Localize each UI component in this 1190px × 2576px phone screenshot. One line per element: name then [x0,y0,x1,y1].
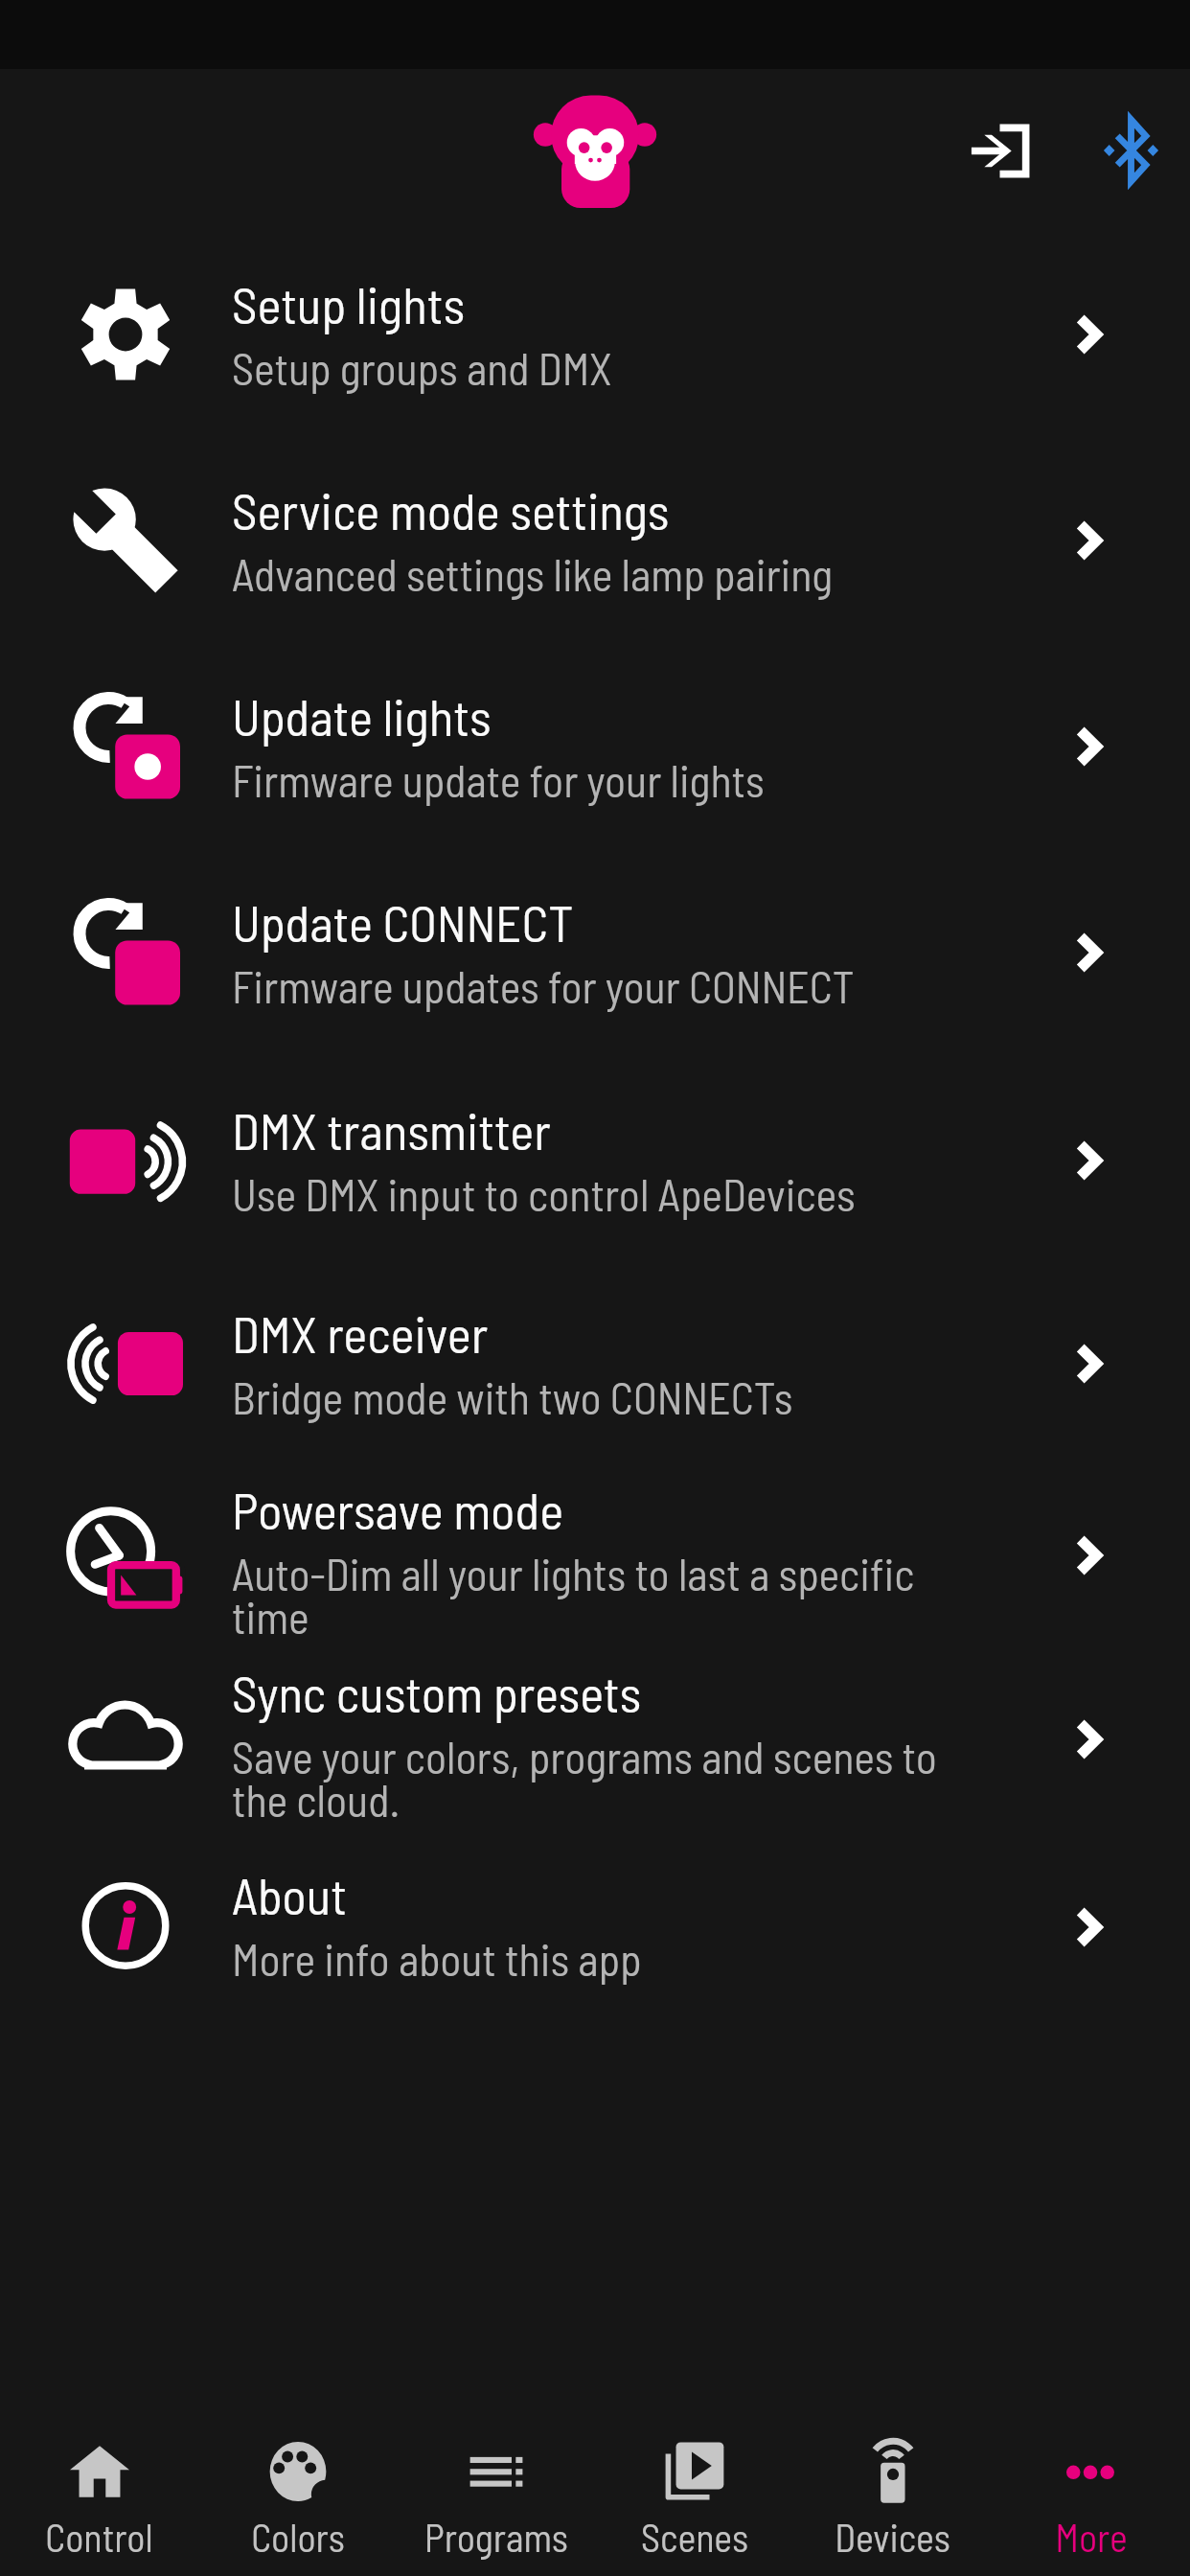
staticText: Control [45,2514,153,2560]
staticText: Firmware update for your lights [232,753,765,806]
staticText: Firmware updates for your CONNECT [232,959,855,1012]
staticText: Advanced settings like lamp pairing [232,547,834,600]
staticText: Update lights [232,685,492,747]
button[interactable]: Programs [397,2394,595,2576]
staticText: DMX transmitter [232,1099,551,1161]
button[interactable]: Scenes [595,2394,793,2576]
staticText: More info about this app [232,1932,642,1985]
staticText: Devices [835,2514,950,2560]
staticText: More [1055,2514,1128,2560]
staticText: Setup lights [232,273,466,334]
staticText: About [232,1864,347,1925]
staticText: Bridge mode with two CONNECTs [232,1370,793,1423]
button[interactable]: Devices [793,2394,992,2576]
button[interactable]: Service mode settings [0,437,1190,643]
button[interactable]: DMX transmitter [0,1056,1190,1264]
staticText: Save your colors, programs and scenes to… [232,1730,960,1826]
button[interactable]: DMX receiver [0,1264,1190,1463]
button[interactable]: Update CONNECT [0,849,1190,1056]
button[interactable]: Control [0,2394,198,2576]
button[interactable]: Bluetooth [1077,97,1184,204]
staticText: Auto-Dim all your lights to last a speci… [232,1547,960,1643]
staticText: Scenes [641,2514,748,2560]
button[interactable]: More [992,2394,1190,2576]
button[interactable]: Update lights [0,643,1190,849]
staticText: Sync custom presets [232,1662,642,1723]
button[interactable]: ApeLabs home [532,87,658,214]
button[interactable]: Powersave mode [0,1463,1190,1646]
button[interactable]: Sync custom presets [0,1646,1190,1831]
staticText: Powersave mode [232,1479,564,1540]
button[interactable]: About [0,1831,1190,2022]
staticText: DMX receiver [232,1302,489,1364]
button[interactable]: Colors [198,2394,397,2576]
button[interactable]: Log in [946,97,1053,204]
staticText: Service mode settings [232,479,670,540]
staticText: Update CONNECT [232,891,574,953]
staticText: Colors [251,2514,345,2560]
staticText: Setup groups and DMX [232,341,612,394]
button[interactable]: Setup lights [0,231,1190,437]
staticText: Use DMX input to control ApeDevices [232,1167,856,1220]
staticText: Programs [424,2514,568,2560]
